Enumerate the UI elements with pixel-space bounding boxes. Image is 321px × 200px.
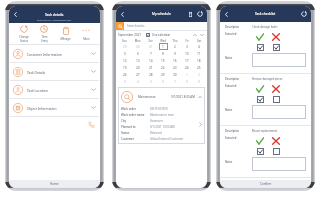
button[interactable]: 4 [193,43,205,50]
button[interactable]: Filter [185,9,195,19]
staticText: City [121,119,150,123]
button[interactable]: 5 [144,78,157,85]
button[interactable]: Home [9,180,100,188]
button[interactable]: Customer Information [13,45,96,62]
button[interactable]: Mark not done [268,32,284,41]
button[interactable]: 7 [144,50,157,57]
button[interactable]: Mark not done [268,136,284,145]
button[interactable]: 25 [193,64,205,71]
button[interactable]: Toggle [273,44,280,51]
button[interactable]: Object Information [13,99,96,116]
button[interactable]: 27 [131,71,144,78]
button[interactable]: 14 [144,57,157,64]
staticText: 30 [173,73,177,77]
staticText: My schedule [152,12,171,16]
staticText: 21 [149,66,153,70]
staticText: September 2021 [118,33,142,37]
button[interactable]: More [81,27,91,41]
button[interactable]: 21 [144,64,157,71]
staticText: Object Information [27,106,57,110]
button[interactable]: 6 [131,50,144,57]
button[interactable]: Task Details [13,63,96,80]
button[interactable]: Task Location [13,81,96,98]
button[interactable]: 16 [169,57,181,64]
staticText: 30 [136,45,140,49]
staticText: Task details [45,12,64,17]
button[interactable]: 17 [181,57,193,64]
button[interactable]: 22 [157,64,169,71]
button[interactable]: 2 [169,43,181,50]
button[interactable]: Toggle [273,148,280,155]
staticText: Fri [181,39,193,43]
staticText: Notes [225,108,252,112]
button[interactable]: Expand [199,32,205,38]
button[interactable]: Change Status [18,25,30,42]
button[interactable]: Mark done [252,136,268,145]
button[interactable]: Time Entry [39,25,49,42]
button[interactable]: Collapse [192,32,198,38]
button[interactable]: 1 [157,43,169,50]
staticText: 1 [186,73,188,77]
button[interactable]: 8 [157,50,169,57]
staticText: 8 [186,80,188,84]
button[interactable]: Mark not done [268,84,284,93]
button[interactable]: 13 [131,57,144,64]
button[interactable]: 3 [118,78,131,85]
button[interactable]: 19 [118,64,131,71]
button[interactable]: Back [9,8,22,21]
button[interactable]: 29 [157,71,169,78]
button[interactable]: 8 [181,78,193,85]
button[interactable]: 4 [131,78,144,85]
staticText: 14 [149,59,153,63]
button[interactable]: 9 [169,50,181,57]
button[interactable]: Back [220,8,233,21]
button[interactable]: 28 [144,71,157,78]
button[interactable]: 20 [131,64,144,71]
button[interactable] [252,157,306,171]
button[interactable]: 10 [181,50,193,57]
button[interactable]: Mark done [252,32,268,41]
button[interactable]: 9 [193,78,205,85]
button[interactable]: 1 [181,71,193,78]
button[interactable]: Confirm [220,180,311,188]
staticText: Work order name [121,113,150,117]
button[interactable]: 11 [193,50,205,57]
button[interactable]: 24 [181,64,193,71]
button[interactable]: 2 [193,71,205,78]
button[interactable] [252,105,306,119]
button[interactable]: 12 [118,57,131,64]
button[interactable]: 30 [169,71,181,78]
button[interactable]: Mileage [59,27,72,41]
staticText: Mount replacements [252,129,278,133]
button[interactable]: 5 [118,50,131,57]
button[interactable]: 18 [193,57,205,64]
staticText: 19 [123,66,127,70]
button[interactable]: Search [116,22,124,30]
staticText: Customer Information [27,52,62,56]
button[interactable]: 29 [118,43,131,50]
staticText: 24 [185,66,189,70]
button[interactable]: 31 [144,43,157,50]
button[interactable]: 15 [157,57,169,64]
button[interactable] [252,53,306,67]
button[interactable]: 3 [181,43,193,50]
button[interactable]: Toggle [257,44,264,51]
button[interactable]: Mark done [252,84,268,93]
button[interactable]: 6 [157,78,169,85]
staticText: 20 [136,66,140,70]
staticText: 8 [162,52,164,56]
button[interactable]: Back [116,8,129,21]
button[interactable]: Call customer [86,119,96,129]
staticText: Executed [225,136,237,140]
button[interactable]: Toggle [257,96,264,103]
button[interactable]: 23 [169,64,181,71]
button[interactable]: 30 [131,43,144,50]
button[interactable]: Refresh [195,9,205,19]
button[interactable]: 26 [118,71,131,78]
button[interactable]: Toggle [273,96,280,103]
button[interactable]: Refresh [299,9,309,19]
button[interactable]: Maintenance [121,87,202,106]
button[interactable]: Toggle [257,148,264,155]
staticText: 25 [197,66,201,70]
button[interactable]: 7 [169,78,181,85]
